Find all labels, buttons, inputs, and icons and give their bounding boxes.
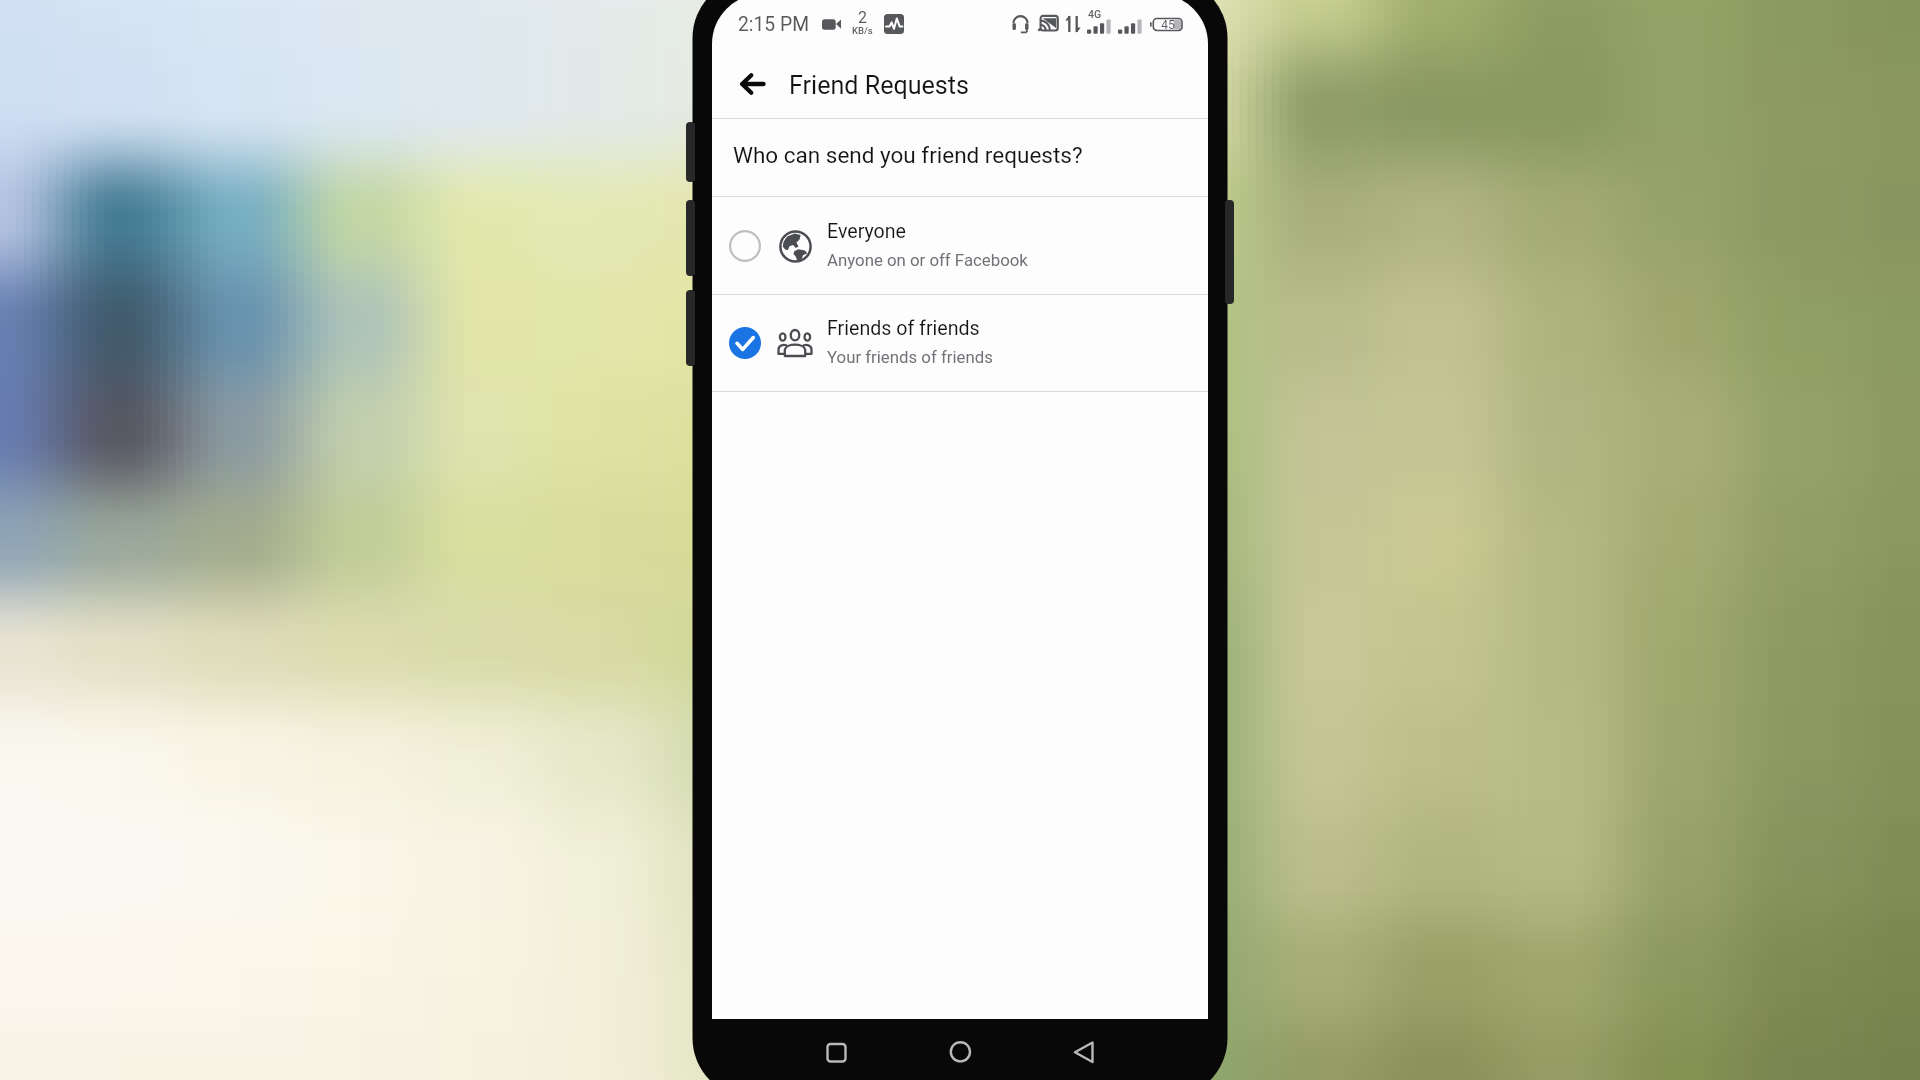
staticText: Who can send you friend requests?	[733, 142, 1083, 168]
staticText: 4G	[1088, 8, 1102, 20]
staticText: Everyone	[827, 220, 906, 243]
button[interactable]: Back	[729, 61, 775, 107]
staticText: 2	[858, 8, 867, 27]
staticText: KB/s	[852, 25, 873, 36]
staticText: Friends of friends	[827, 317, 980, 340]
button[interactable]: Friends of friends	[712, 295, 1208, 391]
staticText: Your friends of friends	[827, 347, 993, 367]
staticText: 45	[1161, 17, 1176, 32]
staticText: Anyone on or off Facebook	[827, 250, 1028, 270]
staticText: Friend Requests	[789, 71, 969, 100]
button[interactable]: Everyone	[712, 197, 1208, 294]
staticText: 2:15 PM	[738, 13, 810, 36]
